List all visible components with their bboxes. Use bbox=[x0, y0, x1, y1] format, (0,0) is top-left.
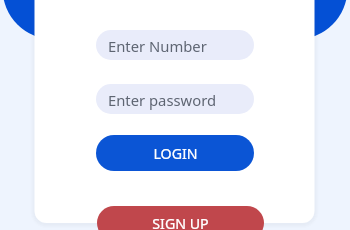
staticText: LOGIN bbox=[153, 144, 198, 163]
button[interactable]: LOGIN bbox=[96, 135, 254, 171]
button[interactable]: Phone number input field bbox=[96, 30, 254, 60]
staticText: SIGN UP bbox=[152, 214, 209, 230]
staticText: Enter Number bbox=[108, 36, 207, 56]
staticText: Enter password bbox=[108, 90, 217, 110]
button[interactable]: SIGN UP bbox=[97, 206, 264, 230]
button[interactable]: Password input field bbox=[96, 84, 254, 114]
